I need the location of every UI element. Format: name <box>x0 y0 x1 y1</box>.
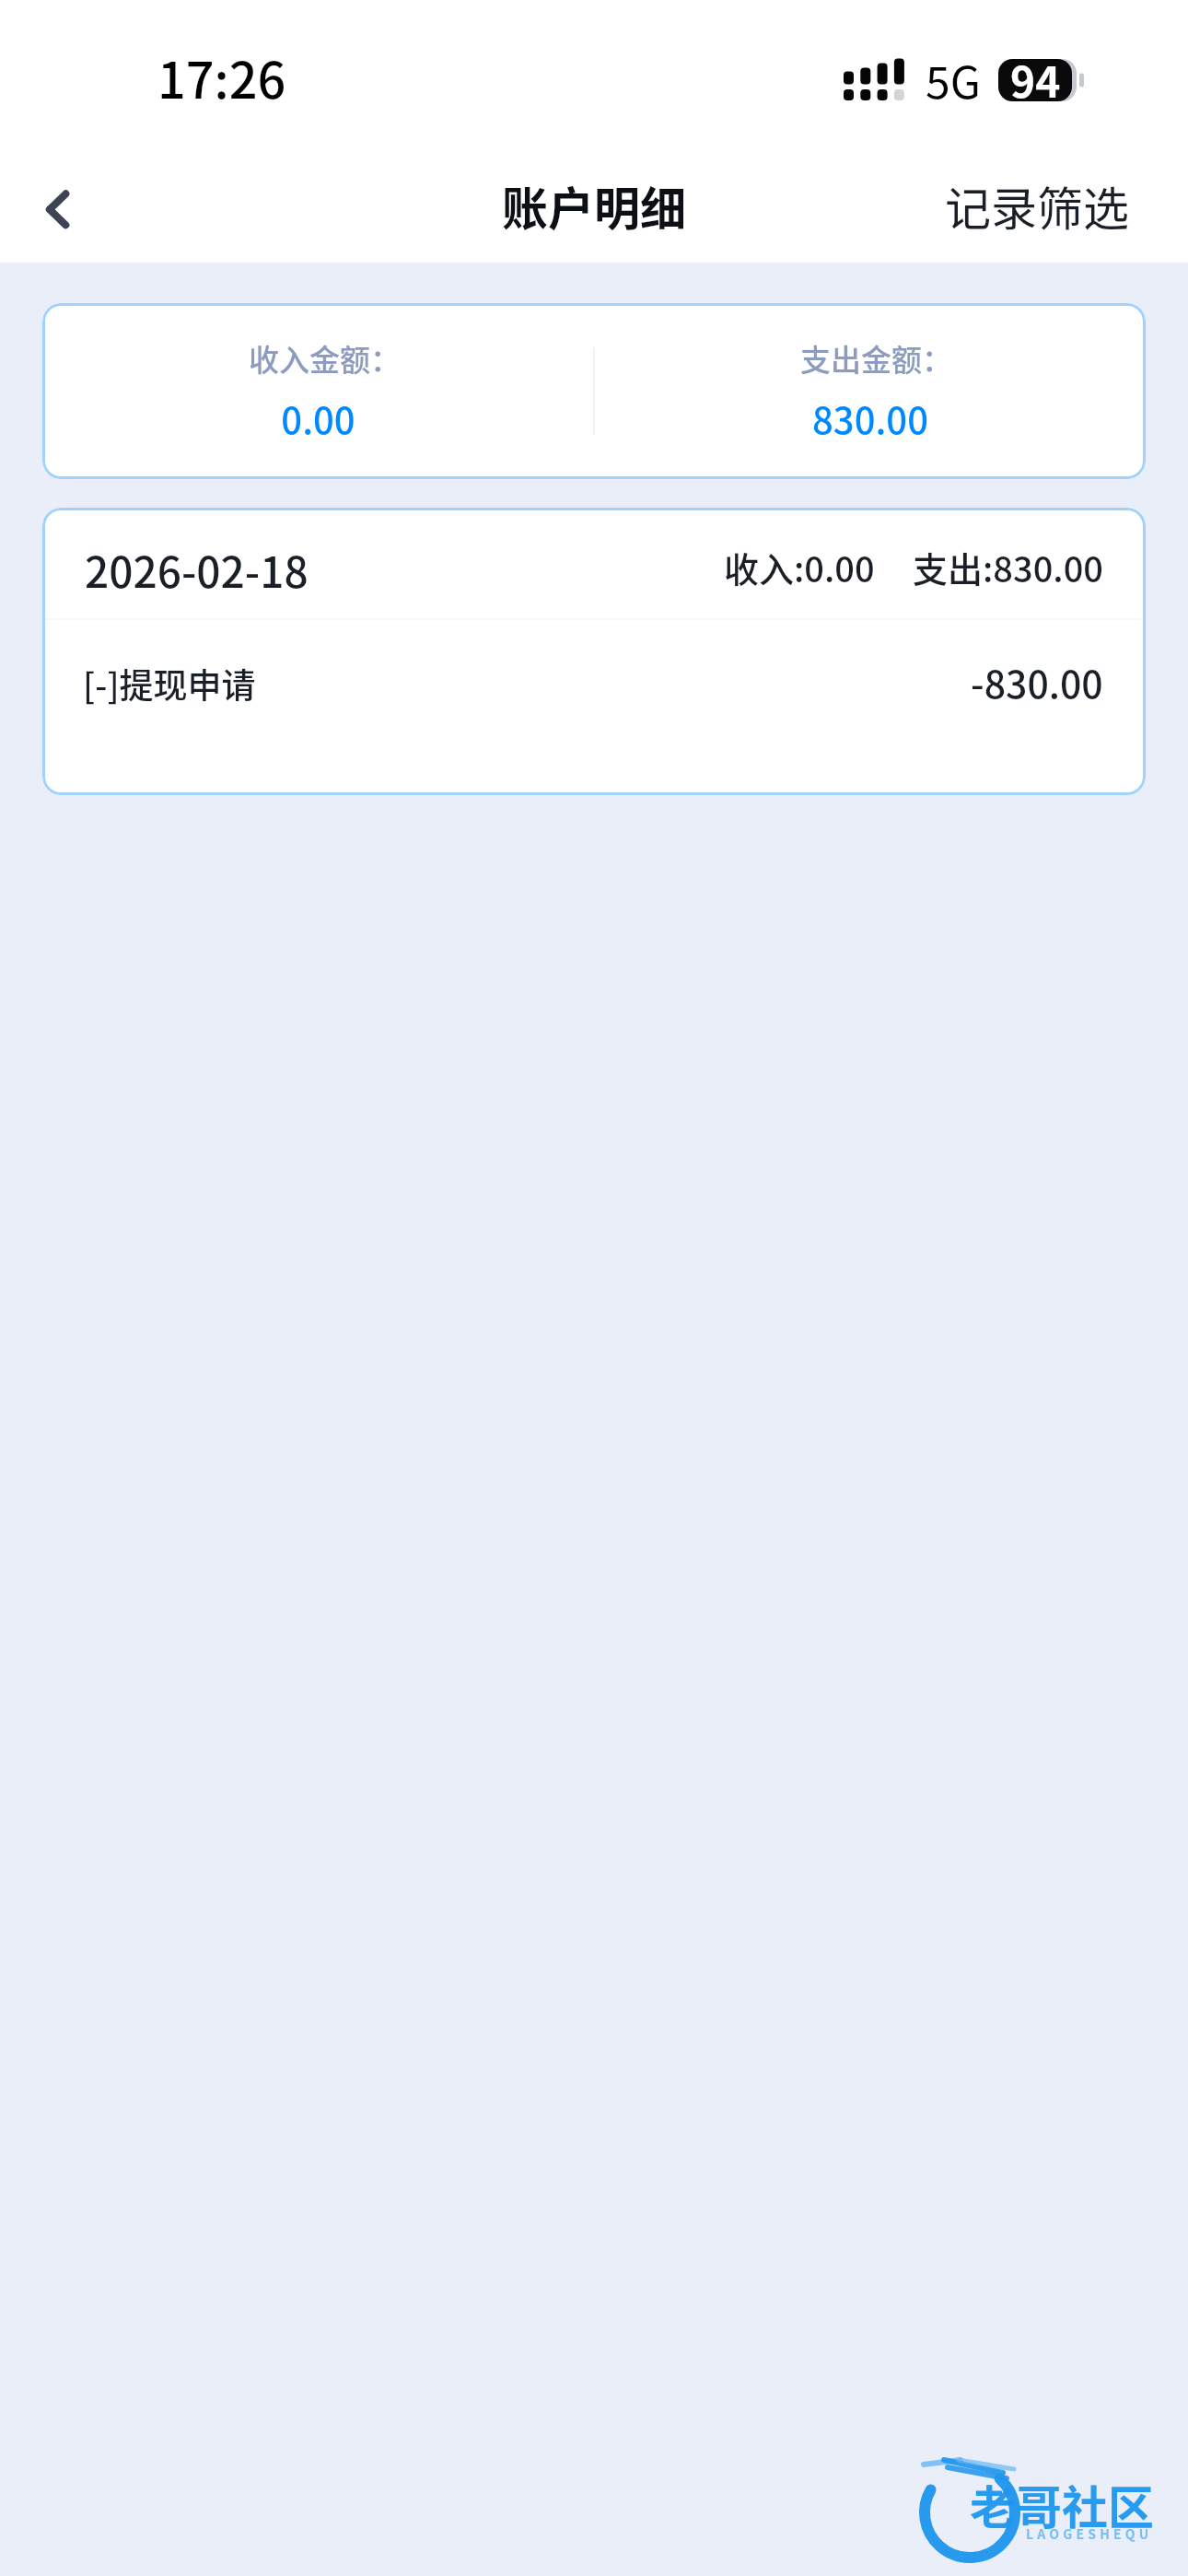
button[interactable]: [-]提现申请 <box>42 620 1146 721</box>
staticText: 支出:830.00 <box>913 542 1103 592</box>
staticText: [-]提现申请 <box>83 659 256 708</box>
staticText: 老哥社区 <box>970 2471 1154 2537</box>
staticText: 收入:0.00 <box>724 542 875 592</box>
button[interactable]: 记录筛选 <box>886 150 1188 261</box>
button[interactable]: Back <box>11 159 103 252</box>
staticText: LAOGESHEQU <box>1026 2524 1153 2543</box>
staticText: 支出金额： <box>800 336 952 381</box>
staticText: 5G <box>926 47 981 111</box>
staticText: 94 <box>1010 49 1061 111</box>
staticText: 账户明细 <box>502 172 686 239</box>
staticText: 收入金额： <box>249 336 401 381</box>
staticText: 2026-02-18 <box>85 539 309 601</box>
staticText: 记录筛选 <box>945 172 1129 239</box>
staticText: 0.00 <box>281 392 355 445</box>
staticText: 830.00 <box>812 392 928 445</box>
staticText: 17:26 <box>157 41 286 112</box>
staticText: -830.00 <box>971 654 1103 708</box>
